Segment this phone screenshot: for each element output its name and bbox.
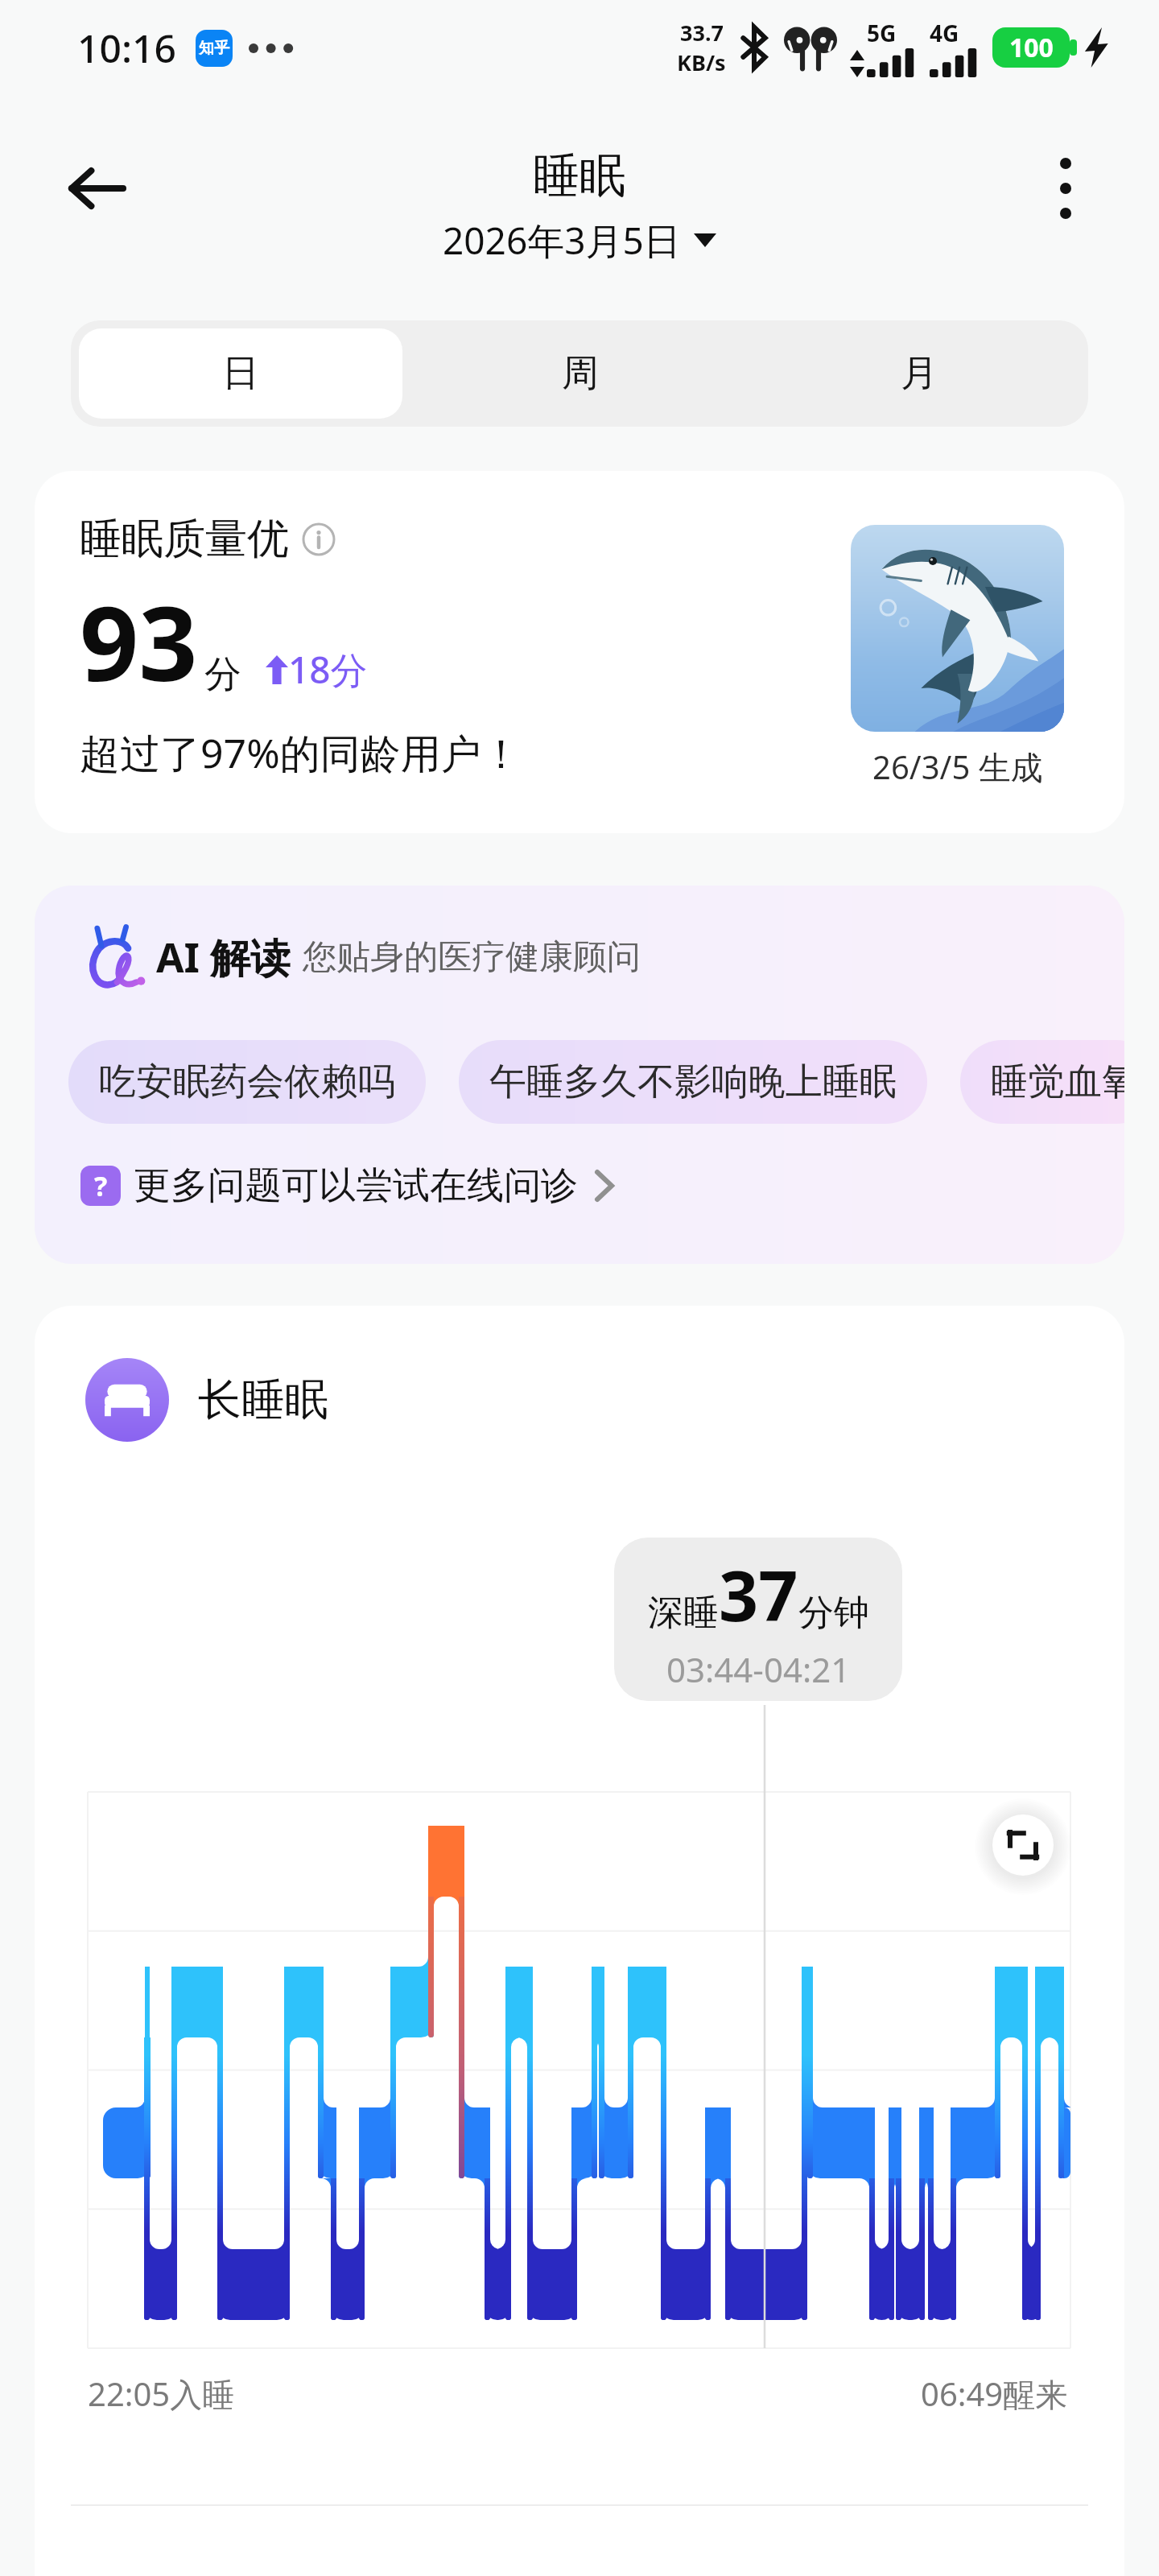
staticText: AI 解读	[156, 930, 291, 985]
staticText: 37	[719, 1547, 798, 1641]
button[interactable]: 2026年3月5日	[438, 212, 721, 269]
staticText: 吃安眠药会依赖吗	[99, 1059, 395, 1105]
button[interactable]: 睡眠质量优	[35, 471, 1124, 833]
staticText: 知乎	[199, 39, 229, 58]
staticText: 分钟	[798, 1591, 869, 1635]
button[interactable]: Back	[50, 142, 143, 235]
staticText: 26/3/5 生成	[872, 745, 1043, 789]
button[interactable]: ?	[80, 1158, 625, 1214]
staticText: 06:49醒来	[921, 2372, 1068, 2416]
staticText: 18分	[288, 644, 368, 695]
staticText: 周	[562, 350, 599, 397]
staticText: ?	[94, 1167, 108, 1204]
staticText: 93	[80, 571, 198, 711]
button[interactable]: 午睡多久不影响晚上睡眠	[459, 1040, 927, 1124]
staticText: 长睡眠	[198, 1373, 328, 1427]
staticText: 您贴身的医疗健康顾问	[303, 936, 641, 979]
button[interactable]: Expand chart	[992, 1814, 1054, 1876]
staticText: 5G	[867, 18, 897, 48]
staticText: 10:16	[77, 22, 176, 74]
staticText: 更多问题可以尝试在线问诊	[134, 1162, 578, 1209]
staticText: 03:44-04:21	[666, 1646, 851, 1692]
button[interactable]: 睡觉血氧低	[960, 1040, 1124, 1124]
staticText: 分	[204, 651, 241, 698]
staticText: 22:05入睡	[88, 2372, 235, 2416]
staticText: 睡眠	[533, 147, 626, 205]
staticText: 100	[1009, 30, 1054, 65]
staticText: 33.7	[680, 18, 724, 47]
staticText: 2026年3月5日	[443, 215, 681, 266]
button[interactable]: 日	[79, 328, 402, 419]
staticText: 4G	[930, 18, 959, 48]
staticText: 睡觉血氧低	[991, 1059, 1124, 1105]
button[interactable]: 吃安眠药会依赖吗	[68, 1040, 426, 1124]
button[interactable]: 周	[419, 328, 741, 419]
staticText: 深睡	[648, 1591, 719, 1635]
staticText: 日	[222, 350, 259, 397]
staticText: 睡眠质量优	[80, 513, 289, 566]
staticText: KB/s	[677, 47, 726, 77]
button[interactable]: 26/3/5 生成	[838, 514, 1077, 800]
button[interactable]: More options	[1019, 142, 1112, 235]
staticText: 月	[901, 350, 938, 397]
staticText: 午睡多久不影响晚上睡眠	[489, 1059, 897, 1105]
staticText: 超过了97%的同龄用户！	[80, 725, 522, 780]
button[interactable]: 月	[757, 328, 1080, 419]
